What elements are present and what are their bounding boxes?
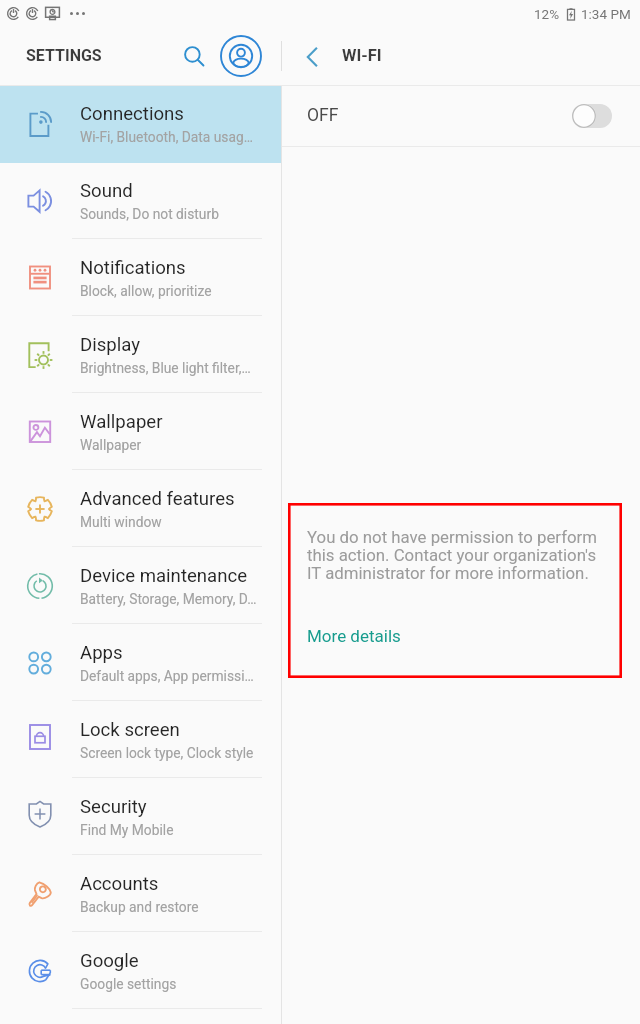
button[interactable]: Accounts: [0, 856, 281, 933]
staticText: Advanced features: [80, 488, 235, 510]
staticText: Wallpaper: [80, 437, 142, 453]
button[interactable]: Wallpaper: [0, 394, 281, 471]
button[interactable]: Connections: [0, 86, 281, 163]
staticText: Google: [80, 950, 139, 972]
staticText: Notifications: [80, 257, 186, 279]
staticText: Sounds, Do not disturb: [80, 206, 219, 222]
staticText: Display: [80, 334, 141, 356]
staticText: Screen lock type, Clock style: [80, 745, 254, 761]
button[interactable]: WI-FI: [330, 34, 370, 75]
staticText: SETTINGS: [26, 46, 102, 65]
staticText: Default apps, App permissi…: [80, 668, 254, 684]
button[interactable]: Account: [219, 34, 263, 78]
staticText: OFF: [307, 105, 339, 126]
button[interactable]: OFF: [282, 86, 640, 147]
button[interactable]: Notifications: [0, 240, 281, 317]
staticText: Google settings: [80, 976, 177, 992]
staticText: More details: [307, 626, 401, 646]
staticText: Lock screen: [80, 719, 180, 741]
staticText: Device maintenance: [80, 565, 248, 587]
button[interactable]: Advanced features: [0, 471, 281, 548]
button[interactable]: Sound: [0, 163, 281, 240]
staticText: Sound: [80, 180, 133, 202]
button[interactable]: Lock screen: [0, 702, 281, 779]
staticText: Battery, Storage, Memory, D…: [80, 591, 257, 607]
button[interactable]: Security: [0, 779, 281, 856]
staticText: 1:34 PM: [581, 6, 631, 22]
button[interactable]: Device maintenance: [0, 548, 281, 625]
staticText: Wi-Fi, Bluetooth, Data usag…: [80, 129, 253, 145]
staticText: Wallpaper: [80, 411, 163, 433]
staticText: Block, allow, prioritize: [80, 283, 212, 299]
button[interactable]: Display: [0, 317, 281, 394]
button[interactable]: Search: [177, 39, 212, 74]
staticText: Backup and restore: [80, 899, 199, 915]
button[interactable]: Google: [0, 933, 281, 1010]
staticText: You do not have permission to perform th…: [307, 527, 609, 583]
staticText: Find My Mobile: [80, 822, 174, 838]
button[interactable]: Apps: [0, 625, 281, 702]
button[interactable]: SETTINGS: [14, 34, 90, 75]
staticText: 12%: [534, 6, 560, 22]
staticText: WI-FI: [342, 46, 382, 65]
staticText: Accounts: [80, 873, 159, 895]
staticText: Multi window: [80, 514, 162, 530]
button[interactable]: More details: [295, 617, 389, 637]
staticText: Connections: [80, 103, 184, 125]
staticText: Security: [80, 796, 147, 818]
staticText: Apps: [80, 642, 123, 664]
button[interactable]: Wi-Fi switch, off: [572, 104, 612, 128]
button[interactable]: Back: [294, 39, 329, 74]
staticText: Brightness, Blue light filter,…: [80, 360, 251, 376]
